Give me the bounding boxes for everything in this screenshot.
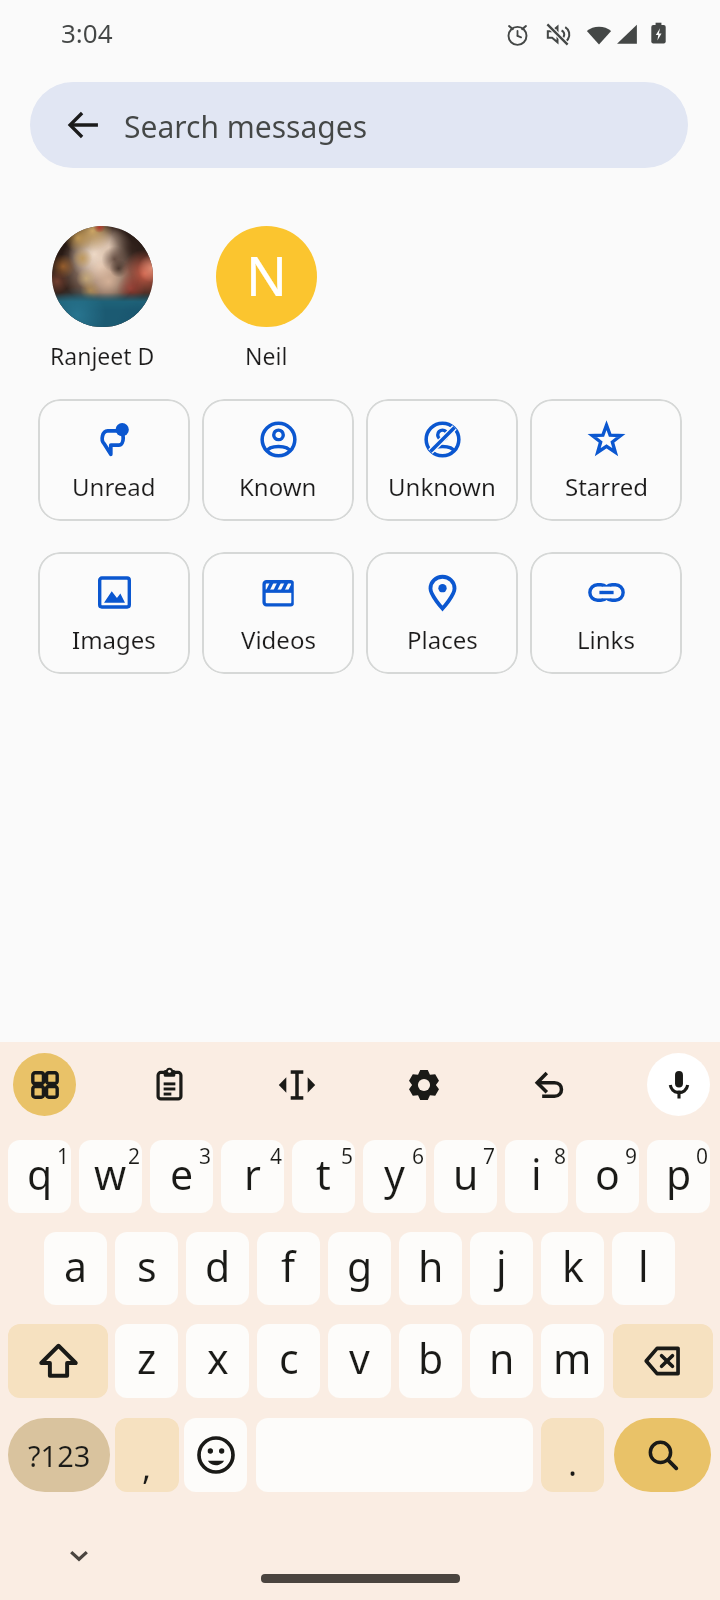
staticText: 1: [57, 1142, 70, 1171]
staticText: y: [384, 1146, 405, 1202]
button[interactable]: Text editing: [265, 1053, 328, 1116]
staticText: 4: [270, 1142, 283, 1171]
button[interactable]: k: [541, 1232, 604, 1305]
button[interactable]: w: [79, 1140, 142, 1213]
button[interactable]: f: [257, 1232, 320, 1305]
staticText: 6: [412, 1142, 425, 1171]
button[interactable]: Clipboard: [138, 1053, 201, 1116]
staticText: 3:04: [61, 15, 113, 50]
button[interactable]: Voice input: [647, 1053, 710, 1116]
staticText: 7: [483, 1142, 496, 1171]
button[interactable]: y: [363, 1140, 426, 1213]
staticText: 3: [199, 1142, 212, 1171]
staticText: t: [316, 1146, 331, 1202]
button[interactable]: e: [150, 1140, 213, 1213]
button[interactable]: x: [186, 1324, 249, 1398]
staticText: N: [246, 238, 288, 312]
staticText: Neil: [245, 340, 288, 371]
staticText: Unknown: [388, 470, 496, 503]
staticText: p: [666, 1146, 692, 1202]
button[interactable]: Shift: [8, 1324, 108, 1398]
button[interactable]: Known: [202, 399, 354, 521]
button[interactable]: Backspace: [613, 1324, 713, 1398]
staticText: j: [496, 1238, 507, 1294]
staticText: f: [281, 1238, 296, 1294]
button[interactable]: t: [292, 1140, 355, 1213]
staticText: i: [531, 1146, 542, 1202]
button[interactable]: s: [115, 1232, 178, 1305]
button[interactable]: b: [399, 1324, 462, 1398]
button[interactable]: Back: [30, 82, 688, 168]
button[interactable]: .: [541, 1418, 604, 1492]
staticText: k: [562, 1238, 584, 1294]
button[interactable]: ,: [115, 1418, 179, 1492]
staticText: Starred: [565, 470, 648, 503]
staticText: c: [279, 1330, 299, 1386]
button[interactable]: l: [612, 1232, 675, 1305]
button[interactable]: Search: [614, 1418, 711, 1492]
staticText: 0: [696, 1142, 709, 1171]
button[interactable]: Unread: [38, 399, 190, 521]
staticText: 5: [341, 1142, 354, 1171]
staticText: Search messages: [124, 106, 368, 147]
button[interactable]: a: [44, 1232, 107, 1305]
staticText: l: [638, 1238, 649, 1294]
button[interactable]: Back: [65, 106, 103, 144]
button[interactable]: o: [576, 1140, 639, 1213]
button[interactable]: ?123: [8, 1418, 110, 1492]
button[interactable]: Links: [530, 552, 682, 674]
staticText: 2: [128, 1142, 141, 1171]
staticText: .: [568, 1440, 578, 1486]
staticText: d: [205, 1238, 231, 1294]
staticText: q: [27, 1146, 53, 1202]
staticText: Videos: [241, 623, 316, 656]
staticText: Unread: [72, 470, 156, 503]
staticText: 8: [554, 1142, 567, 1171]
button[interactable]: Images: [38, 552, 190, 674]
staticText: n: [489, 1330, 515, 1386]
staticText: v: [349, 1330, 370, 1386]
button[interactable]: Undo: [519, 1053, 582, 1116]
staticText: w: [94, 1146, 127, 1202]
button[interactable]: Keyboard modes: [13, 1053, 76, 1116]
staticText: ?123: [28, 1436, 91, 1475]
button[interactable]: N: [176, 226, 357, 371]
button[interactable]: c: [257, 1324, 320, 1398]
staticText: r: [244, 1146, 261, 1202]
staticText: Links: [577, 623, 635, 656]
staticText: Images: [72, 623, 156, 656]
button[interactable]: Videos: [202, 552, 354, 674]
staticText: z: [137, 1330, 157, 1386]
button[interactable]: p: [647, 1140, 710, 1213]
button[interactable]: d: [186, 1232, 249, 1305]
button[interactable]: r: [221, 1140, 284, 1213]
button[interactable]: v: [328, 1324, 391, 1398]
staticText: m: [553, 1330, 592, 1386]
staticText: Places: [407, 623, 478, 656]
button[interactable]: Places: [366, 552, 518, 674]
staticText: s: [137, 1238, 157, 1294]
button[interactable]: j: [470, 1232, 533, 1305]
staticText: h: [418, 1238, 444, 1294]
button[interactable]: n: [470, 1324, 533, 1398]
staticText: o: [595, 1146, 620, 1202]
staticText: Ranjeet D: [50, 340, 155, 371]
button[interactable]: Starred: [530, 399, 682, 521]
button[interactable]: Unknown: [366, 399, 518, 521]
staticText: ,: [142, 1444, 152, 1490]
button[interactable]: Ranjeet D: [12, 226, 193, 371]
button[interactable]: h: [399, 1232, 462, 1305]
button[interactable]: Hide keyboard: [62, 1538, 96, 1572]
button[interactable]: Settings: [392, 1053, 455, 1116]
staticText: a: [64, 1238, 88, 1294]
button[interactable]: m: [541, 1324, 604, 1398]
button[interactable]: z: [115, 1324, 178, 1398]
button[interactable]: Emoji: [184, 1418, 247, 1492]
staticText: x: [207, 1330, 229, 1386]
button[interactable]: q: [8, 1140, 71, 1213]
button[interactable]: g: [328, 1232, 391, 1305]
button[interactable]: i: [505, 1140, 568, 1213]
button[interactable]: u: [434, 1140, 497, 1213]
staticText: Known: [239, 470, 317, 503]
